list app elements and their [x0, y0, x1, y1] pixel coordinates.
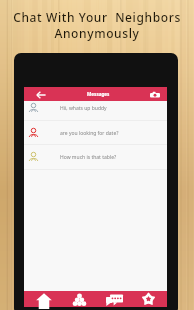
button[interactable]: Messages	[95, 291, 131, 307]
button[interactable]: are you looking for date?	[24, 126, 167, 139]
button[interactable]: Hii, whats up buddy	[24, 101, 167, 114]
button[interactable]: Categories	[59, 291, 95, 307]
button[interactable]: How much is that table?	[24, 150, 167, 163]
staticText: Messages	[87, 91, 110, 97]
button[interactable]: Favourites	[131, 291, 167, 307]
staticText: Hii, whats up buddy	[60, 105, 107, 112]
staticText: How much is that table?	[60, 154, 117, 161]
staticText: Chat With Your Neighbors	[0, 9, 194, 25]
staticText: Anonymously	[0, 25, 194, 41]
button[interactable]: Back	[34, 88, 47, 101]
button[interactable]: Camera	[148, 88, 161, 101]
button[interactable]: Home	[24, 291, 59, 307]
staticText: are you looking for date?	[60, 130, 119, 137]
